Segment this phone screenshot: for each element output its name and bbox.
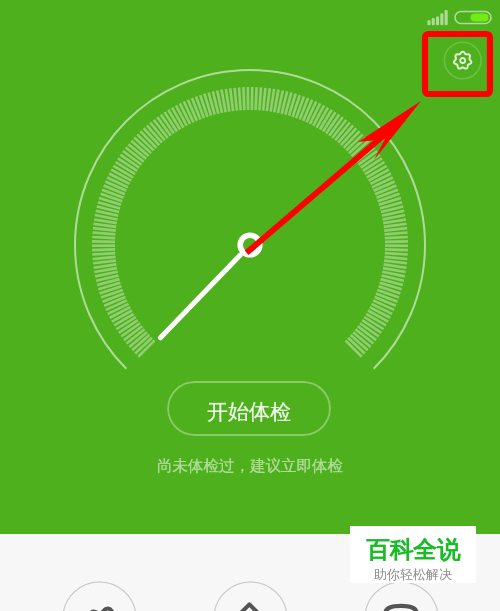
staticText: 开始体检 bbox=[207, 399, 291, 425]
button[interactable]: Settings bbox=[434, 32, 490, 88]
staticText: 尚未体检过，建议立即体检 bbox=[157, 456, 343, 476]
staticText: 百科全说 bbox=[366, 535, 460, 565]
button[interactable]: Home bbox=[213, 581, 288, 611]
button[interactable]: Recent apps bbox=[364, 581, 439, 611]
button[interactable]: 开始体检 bbox=[167, 381, 331, 436]
button[interactable]: Back bbox=[62, 581, 137, 611]
staticText: 助你轻松解决 bbox=[374, 566, 452, 582]
